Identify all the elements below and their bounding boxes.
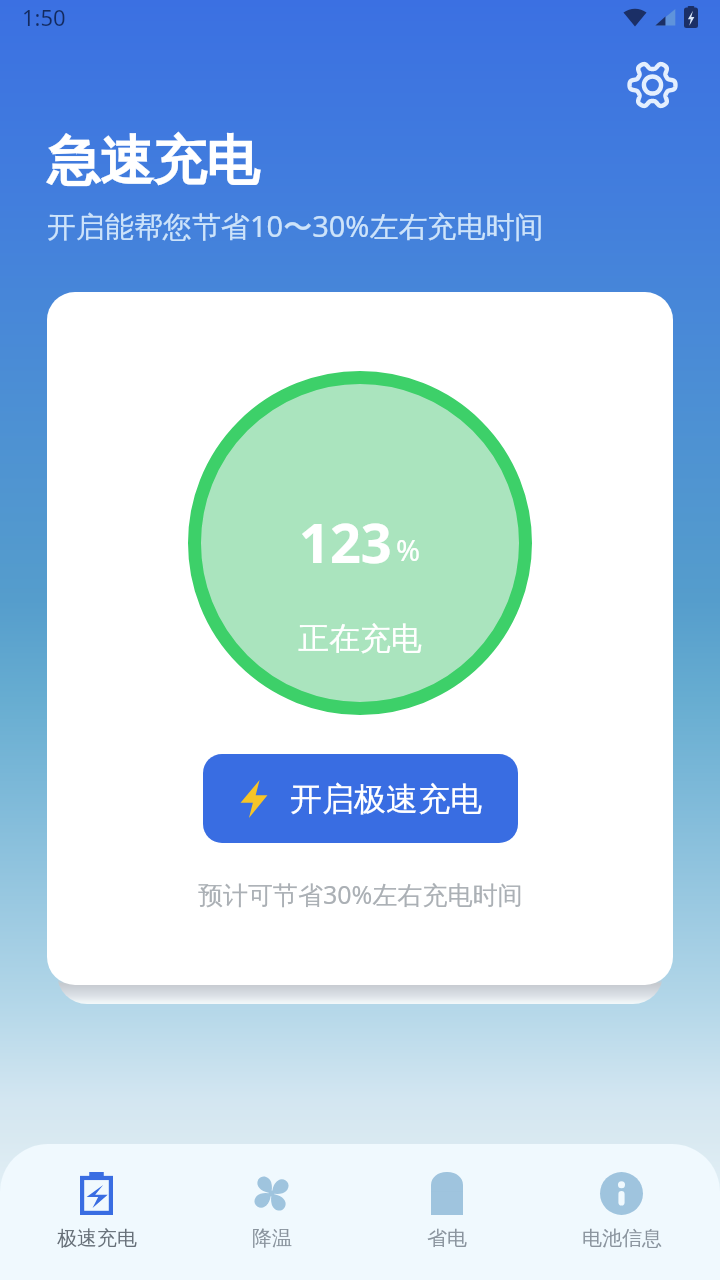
button[interactable]: Settings bbox=[619, 52, 685, 118]
staticText: % bbox=[396, 530, 421, 569]
staticText: 1:50 bbox=[22, 2, 66, 32]
staticText: 预计可节省30%左右充电时间 bbox=[198, 877, 523, 911]
staticText: 开启极速充电 bbox=[290, 779, 482, 819]
staticText: 正在充电 bbox=[298, 619, 422, 658]
staticText: 电池信息 bbox=[582, 1226, 662, 1251]
staticText: 极速充电 bbox=[57, 1226, 137, 1251]
button[interactable]: 极速充电 bbox=[9, 1144, 184, 1251]
staticText: 123 bbox=[299, 505, 392, 579]
button[interactable]: 降温 bbox=[184, 1144, 359, 1251]
button[interactable]: 开启极速充电 bbox=[203, 754, 518, 843]
staticText: 急速充电 bbox=[47, 128, 259, 195]
staticText: 省电 bbox=[427, 1226, 467, 1251]
staticText: 降温 bbox=[252, 1226, 292, 1251]
staticText: 开启能帮您节省10〜30%左右充电时间 bbox=[47, 206, 544, 246]
button[interactable]: 电池信息 bbox=[534, 1144, 709, 1251]
button[interactable]: 省电 bbox=[359, 1144, 534, 1251]
